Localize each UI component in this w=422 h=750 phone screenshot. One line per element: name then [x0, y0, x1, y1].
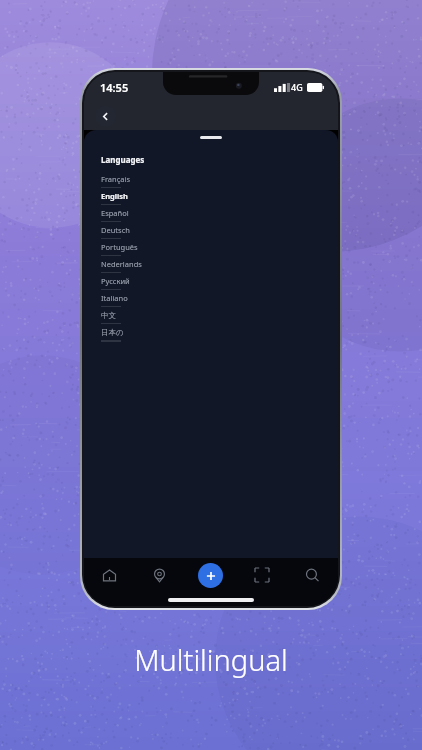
- staticText: Italiano: [101, 293, 128, 303]
- staticText: Languages: [101, 154, 145, 165]
- staticText: 14:55: [100, 80, 129, 95]
- button[interactable]: Scan: [236, 558, 287, 592]
- button[interactable]: Português: [84, 239, 338, 256]
- button[interactable]: Add: [185, 558, 236, 592]
- staticText: Multilingual: [134, 640, 288, 679]
- button[interactable]: Français: [84, 171, 338, 188]
- staticText: Русский: [101, 276, 130, 286]
- staticText: Français: [101, 174, 131, 184]
- button[interactable]: Русский: [84, 273, 338, 290]
- staticText: 日本の: [101, 328, 124, 337]
- button[interactable]: 日本の: [84, 324, 338, 341]
- button[interactable]: Nederlands: [84, 256, 338, 273]
- staticText: 4G: [291, 81, 303, 93]
- staticText: Español: [101, 208, 129, 218]
- staticText: Português: [101, 242, 138, 252]
- button[interactable]: Deutsch: [84, 222, 338, 239]
- button[interactable]: Search: [287, 558, 338, 592]
- staticText: 中文: [101, 311, 116, 320]
- staticText: Nederlands: [101, 259, 142, 269]
- button[interactable]: Home: [84, 558, 134, 592]
- button[interactable]: Places: [134, 558, 185, 592]
- button[interactable]: Italiano: [84, 290, 338, 307]
- staticText: English: [101, 191, 128, 201]
- button[interactable]: English: [84, 188, 338, 205]
- staticText: Deutsch: [101, 225, 130, 235]
- button[interactable]: Español: [84, 205, 338, 222]
- button[interactable]: 中文: [84, 307, 338, 324]
- button[interactable]: Back: [95, 106, 116, 127]
